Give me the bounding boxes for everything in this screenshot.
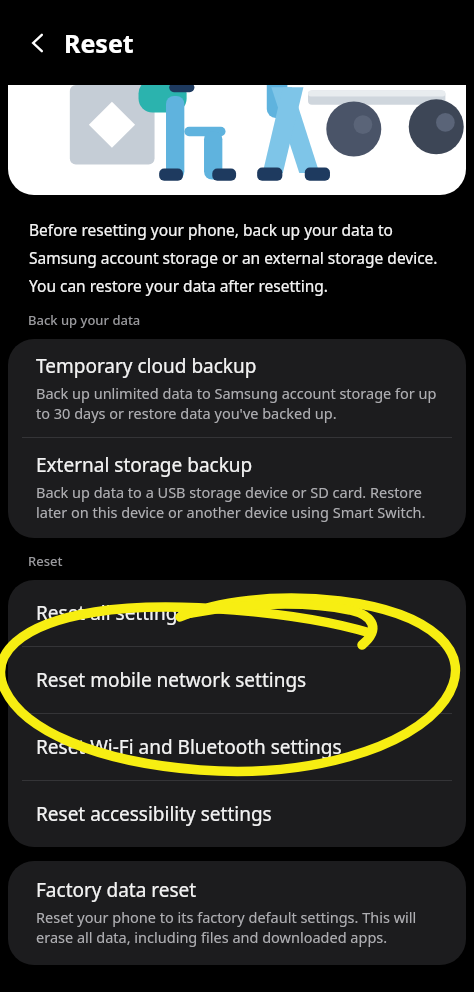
button[interactable]: External storage backup — [8, 438, 466, 538]
staticText: Back up unlimited data to Samsung accoun… — [36, 383, 437, 423]
staticText: Reset your phone to its factory default … — [36, 907, 417, 947]
staticText: Back up data to a USB storage device or … — [36, 482, 426, 522]
staticText: Reset all settings — [36, 600, 187, 626]
staticText: Factory data reset — [36, 877, 197, 903]
staticText: Reset accessibility settings — [36, 801, 272, 827]
button[interactable]: Reset Wi-Fi and Bluetooth settings — [8, 714, 466, 780]
staticText: Temporary cloud backup — [36, 353, 257, 379]
staticText: Reset — [28, 552, 63, 570]
staticText: Before resetting your phone, back up you… — [29, 219, 450, 297]
button[interactable]: Reset all settings — [8, 580, 466, 646]
staticText: External storage backup — [36, 452, 253, 478]
staticText: Back up your data — [28, 311, 141, 329]
button[interactable]: Reset mobile network settings — [8, 647, 466, 713]
button[interactable]: Reset accessibility settings — [8, 781, 466, 847]
staticText: Reset mobile network settings — [36, 667, 307, 693]
button[interactable]: Temporary cloud backup — [8, 339, 466, 437]
staticText: Reset — [64, 26, 134, 60]
staticText: Reset Wi-Fi and Bluetooth settings — [36, 734, 342, 760]
button[interactable]: Back — [14, 19, 62, 67]
button[interactable]: Factory data reset — [8, 861, 466, 965]
